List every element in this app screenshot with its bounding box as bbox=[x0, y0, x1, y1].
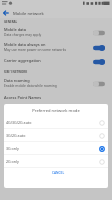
staticText: Data charges may apply bbox=[4, 32, 42, 36]
button[interactable]: Access Point Names bbox=[0, 95, 112, 104]
staticText: CANCEL bbox=[52, 171, 65, 175]
staticText: SIM 1 NETWORK bbox=[4, 70, 28, 74]
staticText: May use more power on some networks bbox=[4, 47, 67, 51]
button[interactable]: Mobile data bbox=[0, 27, 112, 39]
staticText: 2G only bbox=[6, 159, 19, 164]
staticText: 3G/2G auto bbox=[6, 133, 26, 138]
staticText: GENERAL bbox=[4, 20, 18, 24]
button[interactable]: CANCEL bbox=[49, 168, 68, 178]
button[interactable]: 3G/2G auto bbox=[4, 129, 108, 142]
staticText: Carrier aggregation bbox=[4, 58, 41, 63]
button[interactable]: Back bbox=[0, 7, 12, 18]
button[interactable]: 3G only bbox=[4, 142, 108, 155]
staticText: 4G/3G/2G auto bbox=[6, 120, 32, 125]
button[interactable]: Mobile data always on bbox=[0, 42, 112, 54]
staticText: Access Point Names bbox=[4, 95, 42, 100]
staticText: 3G only bbox=[6, 146, 19, 151]
button[interactable]: Carrier aggregation bbox=[0, 58, 112, 67]
button[interactable]: Data roaming bbox=[0, 78, 112, 90]
staticText: Mobile network bbox=[13, 11, 44, 17]
button[interactable]: 4G/3G/2G auto bbox=[4, 116, 108, 129]
staticText: Mobile data always on bbox=[4, 42, 46, 47]
staticText: Data roaming bbox=[4, 78, 30, 83]
button[interactable]: 2G only bbox=[4, 155, 108, 168]
staticText: Enable mobile data while roaming bbox=[4, 83, 57, 87]
staticText: Preferred network mode bbox=[32, 108, 80, 114]
staticText: Mobile data bbox=[4, 27, 27, 32]
